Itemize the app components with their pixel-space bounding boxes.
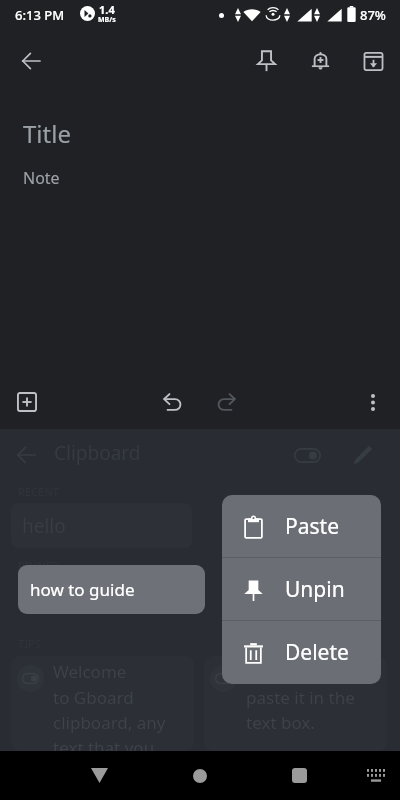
button[interactable]: Paste xyxy=(222,495,381,558)
staticText: Unpin xyxy=(285,575,345,604)
button[interactable]: Redo xyxy=(202,378,250,426)
staticText: Note xyxy=(23,167,60,189)
button[interactable]: how to guide xyxy=(18,565,205,614)
button[interactable]: Undo xyxy=(148,378,196,426)
button[interactable]: Recents xyxy=(275,751,324,800)
staticText: 87% xyxy=(360,6,386,24)
staticText: MB/s xyxy=(98,15,116,25)
button[interactable]: Reminder xyxy=(296,37,344,85)
staticText: hello xyxy=(22,513,66,539)
button[interactable]: Switch keyboard xyxy=(351,751,400,800)
button[interactable]: Archive xyxy=(349,37,397,85)
button[interactable]: Tap on a clip to paste it in the text bo… xyxy=(204,656,387,751)
staticText: 1.4 xyxy=(99,2,115,17)
staticText: Delete xyxy=(285,638,349,667)
button[interactable]: Pin xyxy=(242,37,290,85)
button[interactable]: Back xyxy=(75,751,124,800)
button[interactable]: Add xyxy=(3,378,51,426)
staticText: Tap on a clip to paste it in the text bo… xyxy=(246,660,366,734)
staticText: how to guide xyxy=(30,578,135,601)
button[interactable]: Welcome to Gboard clipboard, any text th… xyxy=(11,656,194,751)
staticText: Paste xyxy=(285,512,339,541)
button[interactable]: Unpin xyxy=(222,558,381,621)
button[interactable]: More options xyxy=(349,378,397,426)
staticText: PINNED xyxy=(18,558,60,573)
staticText: 6:13 PM xyxy=(15,6,65,24)
staticText: Welcome to Gboard clipboard, any text th… xyxy=(53,660,166,751)
button[interactable]: Home xyxy=(175,751,224,800)
button[interactable]: Back xyxy=(7,37,55,85)
button[interactable]: Delete xyxy=(222,621,381,684)
staticText: Title xyxy=(23,117,71,150)
button[interactable]: Toggle clipboard xyxy=(283,431,331,479)
staticText: Clipboard xyxy=(54,440,141,466)
